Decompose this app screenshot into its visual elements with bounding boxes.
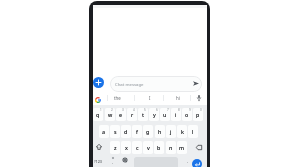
button[interactable]: the <box>108 94 126 102</box>
staticText: q <box>96 111 100 118</box>
button[interactable] <box>93 91 107 105</box>
staticText: 1 <box>100 108 102 111</box>
staticText: d <box>124 128 128 135</box>
button[interactable]: i <box>171 108 181 121</box>
button[interactable]: n <box>166 141 176 154</box>
staticText: t <box>142 111 145 118</box>
button[interactable]: o <box>182 108 192 121</box>
staticText: ?123 <box>94 159 102 164</box>
staticText: y <box>153 111 156 118</box>
staticText: w <box>108 111 113 118</box>
staticText: c <box>136 144 139 151</box>
button[interactable]: v <box>143 141 153 154</box>
staticText: s <box>114 128 117 135</box>
staticText: i <box>175 111 177 118</box>
staticText: g <box>146 128 150 135</box>
staticText: the <box>114 95 121 101</box>
button[interactable]: a <box>99 125 109 138</box>
button[interactable]: . <box>183 155 192 167</box>
staticText: Chat message <box>115 81 144 87</box>
staticText: o <box>185 111 189 118</box>
button[interactable]: y <box>149 108 159 121</box>
button[interactable]: hi <box>172 94 184 102</box>
button[interactable] <box>120 156 130 167</box>
staticText: h <box>158 128 162 135</box>
button[interactable]: w <box>105 108 115 121</box>
button[interactable] <box>93 140 108 153</box>
staticText: y <box>153 111 156 118</box>
staticText: l <box>192 128 194 135</box>
staticText: I <box>149 95 151 101</box>
button[interactable]: ?123 <box>93 156 103 167</box>
button[interactable] <box>190 140 205 153</box>
staticText: e <box>119 111 123 118</box>
staticText: n <box>169 144 173 151</box>
button[interactable]: u <box>160 108 170 121</box>
staticText: p <box>196 111 200 118</box>
staticText: z <box>114 144 117 151</box>
button[interactable]: b <box>154 141 164 154</box>
staticText: l <box>192 128 194 135</box>
button[interactable]: f <box>132 125 142 138</box>
staticText: 8 <box>178 108 180 111</box>
staticText: v <box>147 144 150 151</box>
button[interactable]: m <box>177 141 187 154</box>
button[interactable]: x <box>121 141 131 154</box>
button[interactable] <box>93 77 104 88</box>
staticText: r <box>131 111 134 118</box>
staticText: , <box>112 159 114 165</box>
staticText: 3 <box>122 108 124 111</box>
staticText: m <box>179 144 185 151</box>
staticText: u <box>163 111 167 118</box>
button[interactable] <box>110 76 202 92</box>
staticText: h <box>158 128 162 135</box>
staticText: 0 <box>200 108 202 111</box>
staticText: 2 <box>111 108 113 111</box>
button[interactable]: r <box>127 108 137 121</box>
button[interactable] <box>194 92 204 104</box>
staticText: w <box>108 111 113 118</box>
staticText: j <box>170 128 172 135</box>
staticText: 9 <box>189 108 191 111</box>
button[interactable]: l <box>188 125 198 138</box>
button[interactable]: , <box>109 156 117 167</box>
staticText: 5 <box>144 108 146 111</box>
button[interactable]: t <box>138 108 148 121</box>
staticText: d <box>124 128 128 135</box>
button[interactable]: g <box>143 125 153 138</box>
staticText: x <box>125 144 128 151</box>
staticText: p <box>196 111 200 118</box>
staticText: . <box>187 158 189 164</box>
staticText: c <box>136 144 139 151</box>
staticText: n <box>169 144 173 151</box>
button[interactable]: z <box>110 141 120 154</box>
button[interactable]: k <box>177 125 187 138</box>
staticText: a <box>102 128 106 135</box>
button[interactable]: I <box>144 94 156 102</box>
button[interactable]: j <box>166 125 176 138</box>
staticText: 6 <box>156 108 158 111</box>
staticText: b <box>157 144 161 151</box>
staticText: u <box>163 111 167 118</box>
button[interactable]: h <box>155 125 165 138</box>
button[interactable]: s <box>110 125 120 138</box>
button[interactable]: q <box>93 108 103 121</box>
staticText: q <box>96 111 100 118</box>
staticText: m <box>179 144 185 151</box>
staticText: r <box>131 111 134 118</box>
staticText: f <box>136 128 138 135</box>
staticText: j <box>170 128 172 135</box>
button[interactable]: e <box>116 108 126 121</box>
staticText: o <box>185 111 189 118</box>
staticText: s <box>114 128 117 135</box>
button[interactable]: d <box>121 125 131 138</box>
button[interactable]: c <box>132 141 142 154</box>
button[interactable] <box>192 159 202 167</box>
button[interactable]: p <box>193 108 203 121</box>
staticText: t <box>142 111 145 118</box>
button[interactable] <box>190 78 202 88</box>
staticText: z <box>114 144 117 151</box>
staticText: k <box>181 128 184 135</box>
staticText: x <box>125 144 128 151</box>
